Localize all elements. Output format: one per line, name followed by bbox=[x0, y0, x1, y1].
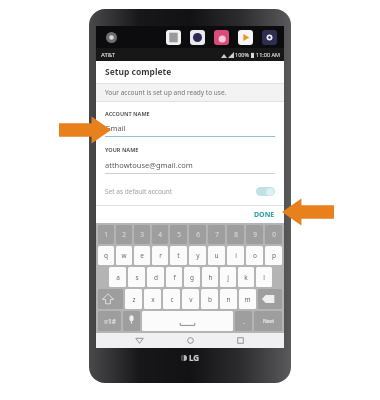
staticText: a bbox=[116, 273, 120, 282]
button[interactable]: s bbox=[128, 267, 145, 287]
button[interactable]: Back bbox=[132, 333, 147, 348]
staticText: n bbox=[226, 295, 231, 304]
staticText: m bbox=[244, 295, 251, 304]
staticText: z bbox=[132, 295, 136, 304]
button[interactable]: h bbox=[202, 267, 218, 287]
button[interactable]: 9 bbox=[246, 225, 263, 244]
staticText: p bbox=[272, 251, 276, 260]
button[interactable]: p bbox=[265, 246, 282, 265]
button[interactable]: k bbox=[238, 267, 254, 287]
staticText: o bbox=[253, 251, 257, 260]
button[interactable]: Space bbox=[142, 311, 233, 331]
staticText: s bbox=[135, 273, 139, 282]
button[interactable]: App icon bbox=[166, 30, 181, 45]
staticText: d bbox=[154, 273, 158, 282]
staticText: e bbox=[140, 251, 144, 260]
button[interactable]: d bbox=[147, 267, 164, 287]
staticText: atthowtouse@gmail.com bbox=[105, 160, 193, 170]
staticText: r bbox=[159, 251, 162, 260]
staticText: 3 bbox=[140, 230, 144, 239]
button[interactable]: App icon bbox=[262, 30, 277, 45]
button[interactable]: Recents bbox=[233, 333, 248, 348]
staticText: Setup complete bbox=[105, 66, 172, 78]
button[interactable]: b bbox=[201, 289, 218, 309]
staticText: j bbox=[227, 273, 229, 282]
button[interactable]: z bbox=[125, 289, 142, 309]
button[interactable]: y bbox=[189, 246, 206, 265]
staticText: g bbox=[190, 273, 194, 282]
button[interactable]: ⌾1# bbox=[98, 311, 121, 331]
button[interactable]: n bbox=[220, 289, 237, 309]
button[interactable]: i bbox=[227, 246, 244, 265]
staticText: f bbox=[173, 273, 176, 282]
button[interactable]: DONE bbox=[245, 207, 284, 223]
button[interactable]: j bbox=[220, 267, 236, 287]
staticText: YOUR NAME bbox=[105, 146, 139, 153]
button[interactable]: Next bbox=[254, 311, 282, 331]
button[interactable]: App icon bbox=[190, 30, 205, 45]
staticText: l bbox=[263, 273, 265, 282]
button[interactable]: v bbox=[182, 289, 199, 309]
staticText: Your account is set up and ready to use. bbox=[105, 88, 227, 97]
button[interactable]: 8 bbox=[227, 225, 244, 244]
staticText: Next bbox=[263, 318, 274, 325]
staticText: 4 bbox=[158, 230, 162, 239]
button[interactable]: e bbox=[134, 246, 150, 265]
button[interactable]: Gmail bbox=[105, 123, 275, 137]
button[interactable]: 2 bbox=[116, 225, 132, 244]
button[interactable]: Shift bbox=[98, 289, 123, 309]
staticText: 100% bbox=[235, 51, 250, 58]
staticText: Set as default account bbox=[105, 187, 173, 196]
button[interactable]: 5 bbox=[170, 225, 187, 244]
button[interactable]: m bbox=[239, 289, 256, 309]
button[interactable]: 3 bbox=[134, 225, 150, 244]
button[interactable]: x bbox=[144, 289, 161, 309]
button[interactable]: atthowtouse@gmail.com bbox=[105, 160, 275, 174]
staticText: 0 bbox=[272, 230, 276, 239]
staticText: b bbox=[208, 295, 212, 304]
button[interactable]: g bbox=[184, 267, 200, 287]
staticText: DONE bbox=[254, 210, 275, 220]
button[interactable]: l bbox=[256, 267, 272, 287]
staticText: 1 bbox=[104, 230, 108, 239]
staticText: AT&T bbox=[101, 51, 115, 59]
staticText: w bbox=[121, 251, 127, 260]
button[interactable]: App icon bbox=[214, 30, 229, 45]
staticText: q bbox=[104, 251, 108, 260]
button[interactable]: Voice input bbox=[123, 311, 140, 331]
staticText: v bbox=[189, 295, 193, 304]
button[interactable]: r bbox=[152, 246, 168, 265]
staticText: c bbox=[170, 295, 174, 304]
button[interactable]: Backspace bbox=[258, 289, 282, 309]
button[interactable]: 0 bbox=[265, 225, 282, 244]
button[interactable]: a bbox=[109, 267, 126, 287]
staticText: i bbox=[235, 251, 237, 260]
button[interactable]: q bbox=[98, 246, 114, 265]
button[interactable]: w bbox=[116, 246, 132, 265]
button[interactable]: Set as default account bbox=[105, 183, 275, 199]
button[interactable]: . bbox=[235, 311, 252, 331]
staticText: t bbox=[177, 251, 180, 260]
staticText: y bbox=[196, 251, 200, 260]
staticText: u bbox=[214, 251, 219, 260]
button[interactable]: 1 bbox=[98, 225, 114, 244]
staticText: 7 bbox=[215, 230, 219, 239]
staticText: Gmail bbox=[105, 123, 126, 133]
button[interactable]: u bbox=[208, 246, 225, 265]
button[interactable]: 6 bbox=[189, 225, 206, 244]
button[interactable]: 7 bbox=[208, 225, 225, 244]
staticText: LG bbox=[189, 352, 200, 363]
button[interactable]: 4 bbox=[152, 225, 168, 244]
staticText: 11:00 AM bbox=[256, 51, 280, 58]
button[interactable]: f bbox=[166, 267, 182, 287]
button[interactable]: App icon bbox=[238, 30, 253, 45]
staticText: ACCOUNT NAME bbox=[105, 110, 150, 117]
staticText: 9 bbox=[253, 230, 257, 239]
button[interactable]: Home bbox=[183, 333, 198, 348]
staticText: h bbox=[208, 273, 213, 282]
button[interactable]: c bbox=[163, 289, 180, 309]
button[interactable]: t bbox=[170, 246, 187, 265]
button[interactable]: o bbox=[246, 246, 263, 265]
staticText: ⌾1# bbox=[104, 317, 116, 326]
staticText: 8 bbox=[234, 230, 238, 239]
